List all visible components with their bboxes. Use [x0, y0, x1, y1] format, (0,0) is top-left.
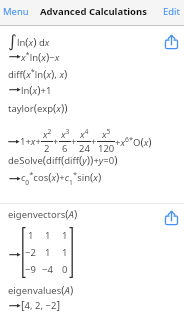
staticText: ln(x)+1 [21, 82, 52, 97]
staticText: + [71, 135, 77, 148]
staticText: 2 [44, 142, 50, 155]
staticText: −9 [25, 263, 36, 276]
staticText: [4, 2, −2] [21, 297, 61, 312]
staticText: −2 [25, 246, 36, 259]
staticText: eigenvectors(A) [8, 206, 78, 221]
staticText: ln(x) dx [17, 34, 50, 49]
button[interactable]: Share [160, 30, 182, 52]
button[interactable]: Edit [160, 1, 184, 22]
staticText: ∫ [8, 31, 17, 51]
staticText: 6 [62, 142, 68, 155]
staticText: x4 [80, 127, 89, 140]
staticText: diff(x*ln(x), x) [8, 66, 68, 81]
staticText: eigenvalues(A) [8, 282, 74, 297]
staticText: Menu [3, 5, 29, 18]
staticText: 1 [45, 229, 51, 242]
staticText: +x6*O(x) [115, 134, 152, 149]
staticText: + [53, 135, 59, 148]
staticText: Edit [163, 5, 181, 18]
staticText: deSolve(diff(diff(y))+y=0) [8, 152, 118, 167]
staticText: 0 [62, 263, 68, 276]
staticText: x2 [43, 127, 52, 140]
staticText: 1 [28, 229, 34, 242]
staticText: x*ln(x)−x [21, 49, 60, 64]
staticText: x5 [102, 127, 111, 140]
staticText: taylor(exp(x)) [8, 100, 68, 115]
staticText: 24 [79, 142, 90, 155]
staticText: Advanced Calculations [40, 5, 147, 18]
staticText: + [91, 135, 97, 148]
staticText: 1 [45, 246, 51, 259]
staticText: 1 [62, 229, 68, 242]
button[interactable]: Menu [0, 1, 32, 22]
staticText: 1 [62, 246, 68, 259]
staticText: c0*cos(x)+c1*sin(x) [21, 169, 102, 187]
staticText: 120 [98, 142, 115, 155]
staticText: −4 [42, 263, 53, 276]
staticText: x3 [61, 127, 70, 140]
button[interactable]: Share [160, 206, 182, 228]
staticText: 1+x+ [20, 135, 41, 148]
